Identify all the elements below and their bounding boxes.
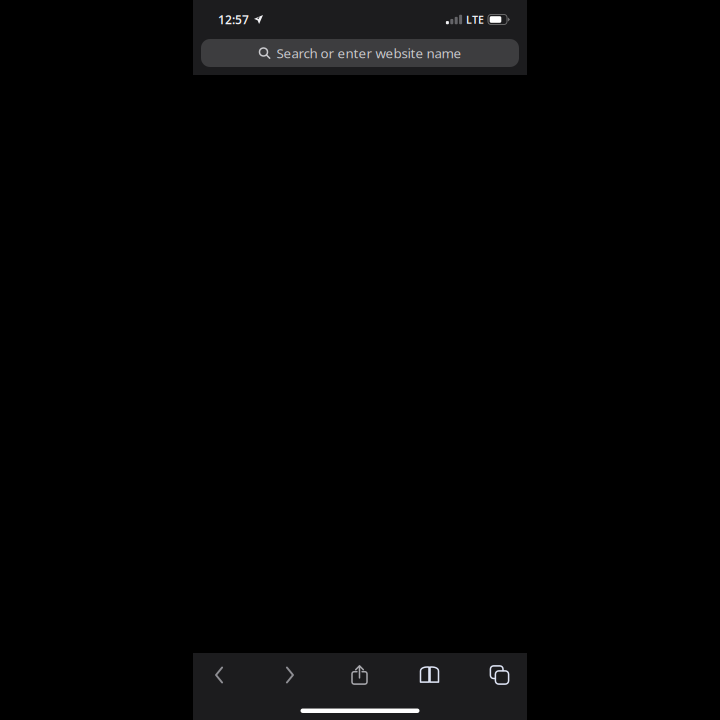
button[interactable]: Tabs [464, 653, 534, 697]
button[interactable]: Bookmarks [394, 653, 464, 697]
staticText: LTE [466, 12, 484, 27]
button[interactable]: Search or enter website name [201, 39, 519, 67]
button[interactable]: Forward [254, 653, 324, 697]
staticText: Search or enter website name [276, 44, 461, 62]
button[interactable]: Share [324, 653, 394, 697]
staticText: 12:57 [218, 11, 249, 27]
button[interactable]: Back [184, 653, 254, 697]
